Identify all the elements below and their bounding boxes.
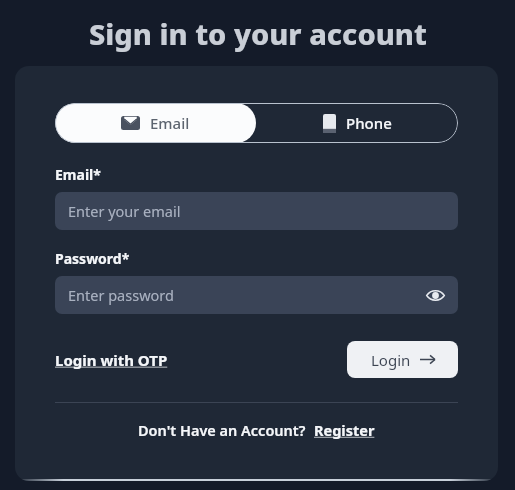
button[interactable]: Email <box>55 103 256 143</box>
staticText: Don't Have an Account? <box>138 420 306 440</box>
staticText: Login <box>371 350 411 370</box>
staticText: Login with OTP <box>55 350 168 370</box>
button[interactable]: Phone <box>256 103 458 143</box>
staticText: Email <box>150 113 190 133</box>
staticText: Enter password <box>68 285 174 305</box>
button[interactable]: Login <box>347 341 458 378</box>
button[interactable]: Enter your email <box>55 192 458 230</box>
staticText: Sign in to your account <box>89 14 427 53</box>
button[interactable]: Show password <box>422 282 448 308</box>
staticText: Password* <box>55 249 130 268</box>
staticText: Phone <box>346 113 392 133</box>
button[interactable]: Login with OTP <box>55 350 168 370</box>
staticText: Email* <box>55 165 101 184</box>
button[interactable]: Register <box>314 420 375 440</box>
button[interactable]: Enter password <box>55 276 458 314</box>
staticText: Register <box>314 420 375 440</box>
staticText: Enter your email <box>68 201 181 221</box>
